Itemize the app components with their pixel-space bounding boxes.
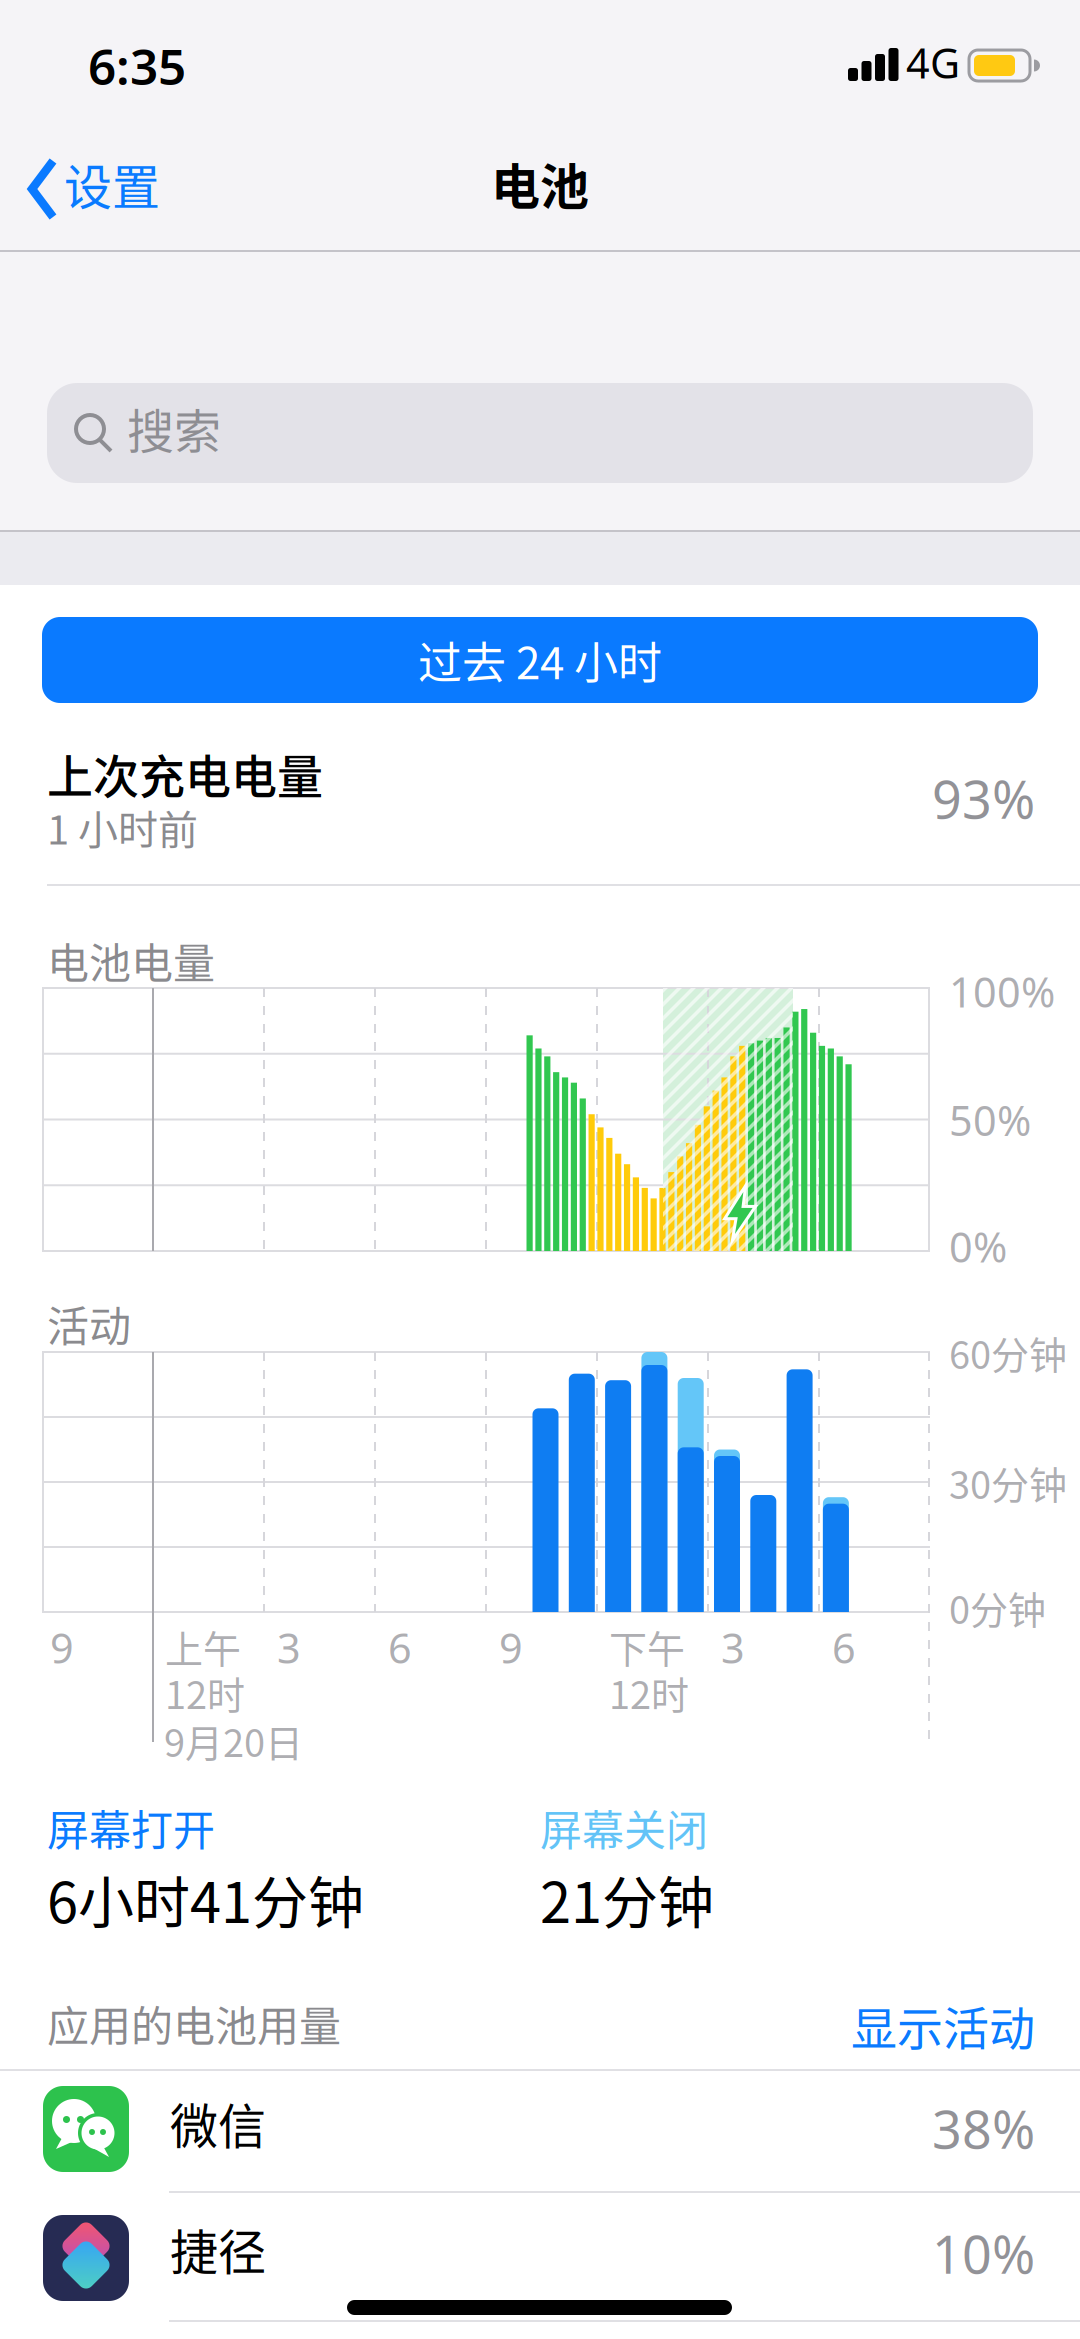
staticText: 搜索 [127, 394, 221, 462]
staticText: 50% [949, 1092, 1031, 1147]
staticText: 电池 [491, 148, 589, 219]
staticText: 下午 [609, 1619, 685, 1674]
staticText: 9月20日 [164, 1713, 303, 1768]
staticText: 上午 [165, 1619, 241, 1674]
staticText: 9 [50, 1620, 74, 1675]
staticText: 电池电量 [47, 930, 215, 991]
staticText: 12时 [609, 1665, 689, 1720]
staticText: 过去 24 小时 [418, 628, 662, 692]
staticText: 捷径 [170, 2214, 266, 2283]
staticText: 0分钟 [949, 1580, 1046, 1635]
button[interactable]: 捷径 [0, 2191, 1080, 2320]
staticText: 6 [832, 1620, 856, 1675]
staticText: 应用的电池用量 [47, 1993, 341, 2054]
staticText: 100% [949, 964, 1055, 1019]
staticText: 3 [721, 1620, 745, 1675]
staticText: 屏幕关闭 [540, 1797, 708, 1858]
staticText: 显示活动 [851, 1992, 1035, 2059]
staticText: 9 [499, 1620, 523, 1675]
button[interactable]: 搜索 [47, 383, 1033, 483]
button[interactable]: 显示活动 [851, 1992, 1035, 2059]
button[interactable]: 微信 [0, 2070, 1080, 2191]
staticText: 设置 [64, 149, 160, 218]
staticText: 活动 [47, 1293, 131, 1354]
staticText: 6:35 [88, 33, 186, 98]
staticText: 30分钟 [949, 1455, 1067, 1510]
button[interactable]: 过去 24 小时 [42, 617, 1038, 703]
staticText: 6 [388, 1620, 412, 1675]
staticText: 0% [949, 1219, 1007, 1274]
staticText: 38% [932, 2094, 1035, 2163]
staticText: 3 [277, 1620, 301, 1675]
staticText: 10% [932, 2219, 1035, 2288]
staticText: 屏幕打开 [47, 1797, 215, 1858]
staticText: 1 小时前 [47, 798, 198, 856]
staticText: 6小时41分钟 [47, 1858, 364, 1939]
staticText: 上次充电电量 [47, 740, 323, 807]
staticText: 12时 [165, 1665, 245, 1720]
staticText: 21分钟 [540, 1858, 714, 1939]
staticText: 4G [906, 35, 960, 90]
staticText: 60分钟 [949, 1325, 1067, 1380]
staticText: 93% [932, 764, 1035, 833]
button[interactable]: 返回设置 [27, 154, 207, 226]
staticText: 微信 [170, 2088, 266, 2157]
